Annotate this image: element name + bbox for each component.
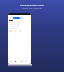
staticText: simple, fast, beautiful [0,7,64,10]
staticText: Build beautiful apps [0,3,64,6]
